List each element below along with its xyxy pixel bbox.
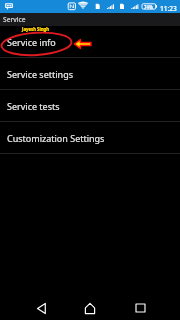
button[interactable]: Service info — [0, 26, 180, 58]
button[interactable]: Service settings — [0, 58, 180, 90]
staticText: Jayesh Singh — [22, 26, 50, 32]
staticText: Service tests — [7, 100, 60, 112]
button[interactable]: Home — [73, 296, 107, 320]
button[interactable]: Service tests — [0, 90, 180, 122]
staticText: 11:23 — [160, 4, 177, 13]
staticText: Customization Settings — [7, 132, 105, 144]
button[interactable]: Customization Settings — [0, 122, 180, 154]
staticText: 74% — [144, 4, 153, 10]
staticText: Service info — [7, 36, 56, 48]
staticText: Service — [3, 15, 26, 24]
button[interactable]: Recent apps — [123, 296, 157, 320]
staticText: Service settings — [7, 68, 73, 80]
staticText: Jayesh Singh — [22, 26, 50, 32]
button[interactable]: Back — [24, 296, 58, 320]
